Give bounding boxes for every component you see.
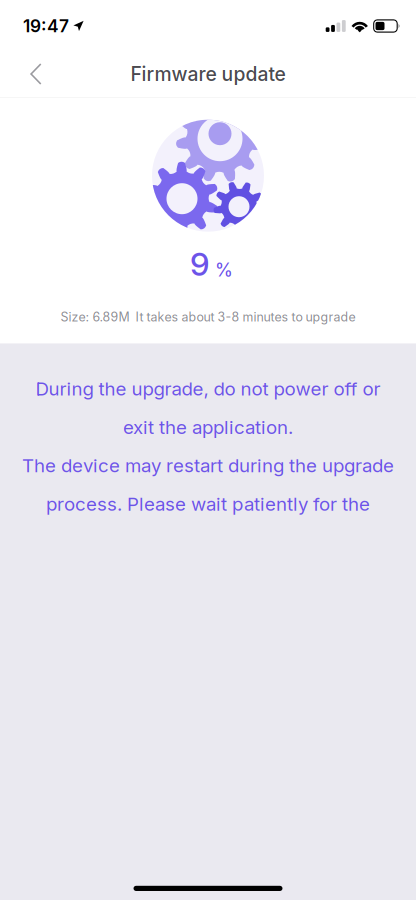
staticText: 19:47 [23, 15, 69, 36]
staticText: The device may restart during the upgrad… [22, 454, 394, 477]
staticText: exit the application. [123, 416, 293, 438]
button[interactable]: Back [14, 52, 58, 96]
staticText: During the upgrade, do not power off or [35, 377, 380, 400]
staticText: Firmware update [130, 62, 285, 86]
staticText: Size: 6.89M It takes about 3-8 minutes t… [60, 309, 355, 324]
staticText: process. Please wait patiently for the [46, 493, 370, 515]
staticText: % [215, 259, 233, 281]
staticText: 9 [190, 245, 210, 283]
